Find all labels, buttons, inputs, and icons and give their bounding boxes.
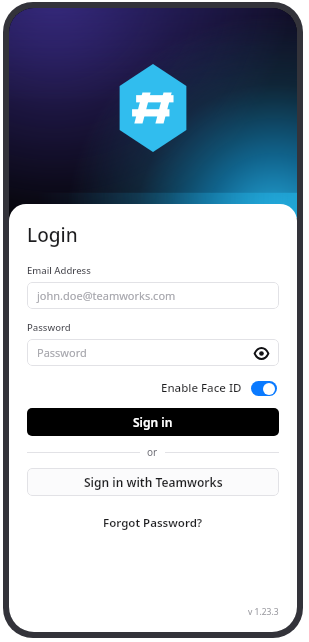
staticText: Password xyxy=(27,321,71,334)
button[interactable]: Sign in with Teamworks xyxy=(27,468,279,496)
staticText: Enable Face ID xyxy=(161,380,242,396)
staticText: Forgot Password? xyxy=(103,515,203,531)
staticText: john.doe@teamworks.com xyxy=(37,288,269,303)
button[interactable]: Enable Face ID xyxy=(159,378,279,398)
staticText: or xyxy=(147,445,158,459)
staticText: Login xyxy=(27,222,78,248)
button[interactable]: john.doe@teamworks.com xyxy=(27,282,279,309)
staticText: Sign in xyxy=(133,414,173,430)
button[interactable]: Sign in xyxy=(27,408,279,436)
staticText: Password xyxy=(37,345,253,360)
button[interactable]: Forgot Password? xyxy=(97,512,209,534)
staticText: v 1.23.3 xyxy=(248,606,279,618)
staticText: Sign in with Teamworks xyxy=(84,474,223,490)
button[interactable]: Enable Face ID toggle xyxy=(251,381,277,396)
button[interactable]: Password xyxy=(27,339,279,366)
button[interactable]: Show password xyxy=(253,345,269,361)
staticText: Email Address xyxy=(27,264,91,277)
